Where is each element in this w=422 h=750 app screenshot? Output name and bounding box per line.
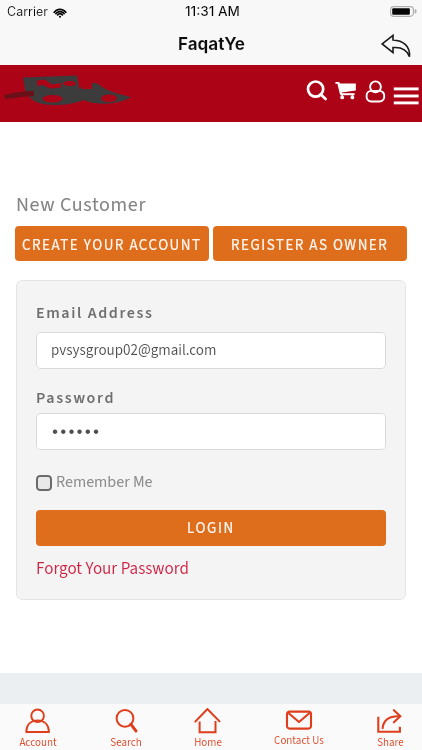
staticText: Email Address bbox=[36, 302, 154, 325]
button[interactable]: Back bbox=[377, 26, 415, 64]
staticText: Share bbox=[377, 735, 404, 750]
button[interactable]: Remember Me bbox=[36, 471, 153, 494]
staticText: Password bbox=[36, 387, 116, 410]
button[interactable]: Forgot Your Password bbox=[36, 557, 189, 581]
button[interactable]: Shopping cart bbox=[333, 77, 359, 103]
button[interactable]: Search bbox=[88, 704, 164, 750]
button[interactable]: Menu bbox=[390, 79, 422, 109]
button[interactable]: Account bbox=[364, 77, 388, 101]
button[interactable]: Contact Us bbox=[261, 704, 337, 750]
staticText: Home bbox=[194, 735, 222, 750]
staticText: LOGIN bbox=[187, 518, 235, 539]
button[interactable]: Search bbox=[304, 77, 328, 101]
staticText: Contact Us bbox=[274, 733, 324, 749]
staticText: Search bbox=[110, 735, 142, 750]
staticText: REGISTER AS OWNER bbox=[231, 235, 389, 256]
button[interactable]: pvsysgroup02@gmail.com bbox=[36, 332, 386, 369]
button[interactable]: Home bbox=[170, 704, 246, 750]
staticText: New Customer bbox=[16, 191, 146, 219]
staticText: FaqatYe bbox=[178, 34, 245, 55]
button[interactable]: REGISTER AS OWNER bbox=[213, 226, 407, 261]
staticText: ●●●●●● bbox=[52, 425, 102, 439]
staticText: Carrier bbox=[7, 4, 48, 19]
staticText: 11:31 AM bbox=[185, 3, 240, 19]
staticText: Remember Me bbox=[56, 471, 153, 494]
staticText: pvsysgroup02@gmail.com bbox=[51, 340, 217, 361]
button[interactable]: CREATE YOUR ACCOUNT bbox=[15, 226, 209, 261]
button[interactable]: Share bbox=[352, 704, 422, 750]
staticText: Account bbox=[19, 735, 57, 750]
button[interactable]: Account bbox=[0, 704, 76, 750]
staticText: CREATE YOUR ACCOUNT bbox=[22, 235, 202, 256]
button[interactable]: ●●●●●● bbox=[36, 413, 386, 450]
button[interactable]: LOGIN bbox=[36, 510, 386, 546]
